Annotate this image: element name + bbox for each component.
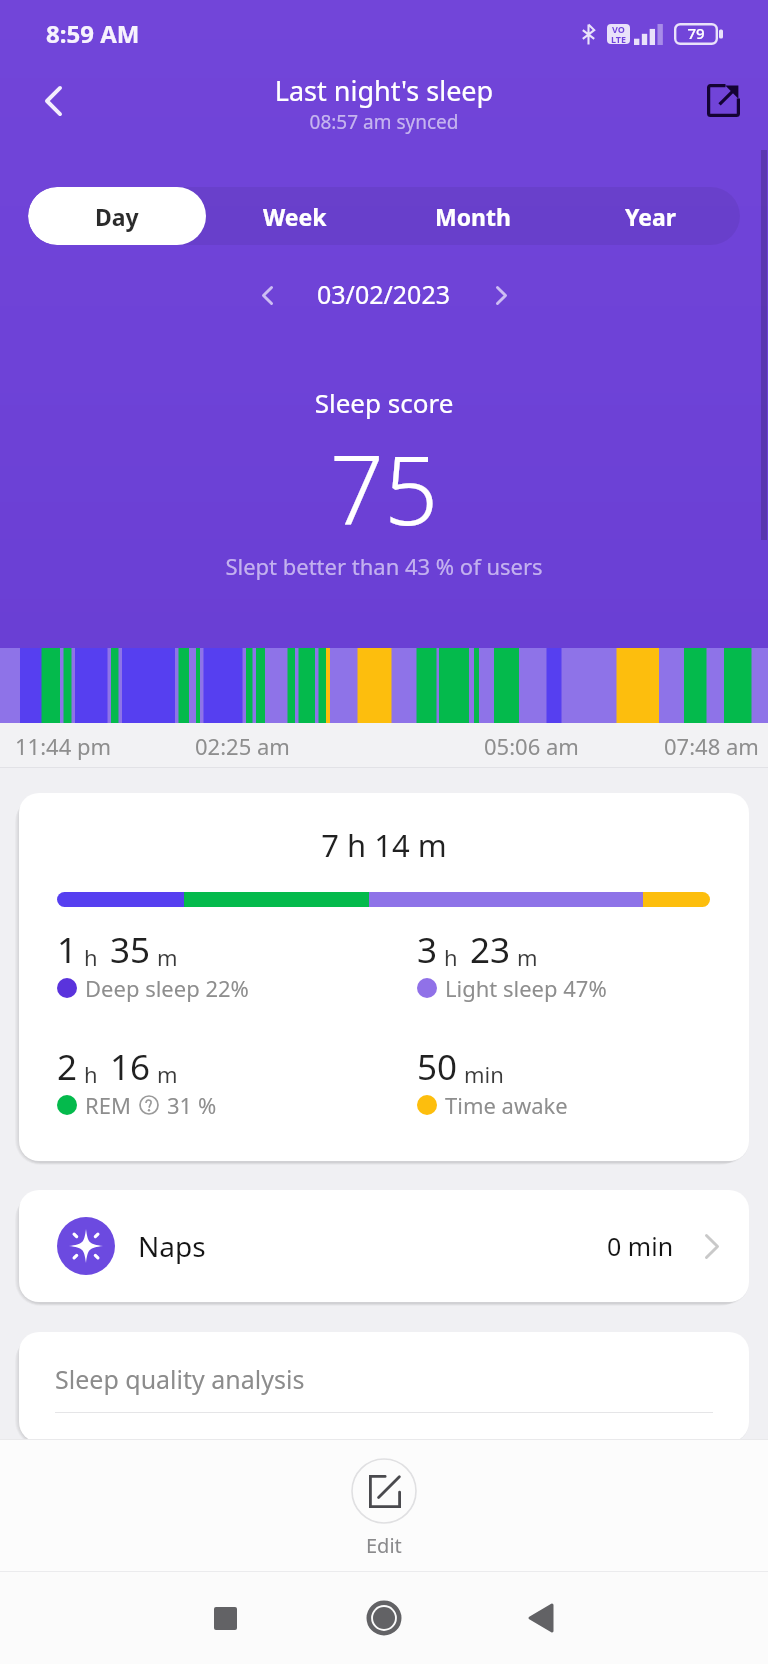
staticText: Last night's sleep [0,72,768,109]
staticText: LTE [607,33,630,44]
staticText: 3 [417,926,438,974]
staticText: Edit [366,1532,402,1559]
staticText: Naps [138,1227,206,1265]
staticText: Sleep score [0,385,768,420]
button[interactable]: Home [354,1588,414,1648]
staticText: 2 [57,1043,78,1091]
staticText: 0 min [607,1229,674,1263]
staticText: Slept better than 43 % of users [0,551,768,581]
staticText: REM [85,1090,131,1120]
button[interactable]: Day [28,187,206,245]
button[interactable]: Next day [479,273,523,317]
staticText: 1 [57,926,78,974]
staticText: 50 [417,1043,458,1091]
staticText: 07:48 am [664,731,759,761]
staticText: Light sleep 47% [445,973,607,1003]
staticText: 16 [110,1043,151,1091]
staticText: 11:44 pm [15,731,112,761]
button[interactable]: Back [23,71,83,131]
staticText: Time awake [445,1090,568,1120]
staticText: 35 [110,926,151,974]
staticText: h [444,942,458,972]
staticText: 7 h 14 m [19,824,749,866]
staticText: m [157,1059,178,1089]
button[interactable]: Back [511,1588,571,1648]
staticText: VO [607,24,630,35]
button[interactable]: Recent apps [195,1588,255,1648]
staticText: Deep sleep 22% [85,973,249,1003]
button[interactable]: Week [206,187,384,245]
staticText: min [464,1059,504,1089]
staticText: 8:59 AM [46,17,140,50]
staticText: Day [95,201,139,232]
staticText: 75 [0,423,768,552]
staticText: h [84,942,98,972]
staticText: m [517,942,538,972]
staticText: 08:57 am synced [0,109,768,135]
button[interactable]: Year [562,187,740,245]
staticText: 79 [674,23,718,43]
staticText: 03/02/2023 [317,277,451,311]
staticText: 05:06 am [484,731,579,761]
staticText: 02:25 am [195,731,290,761]
staticText: Sleep quality analysis [55,1362,305,1396]
staticText: h [84,1059,98,1089]
button[interactable]: Naps [57,1190,719,1302]
button[interactable]: Share [693,70,753,130]
staticText: Week [263,201,327,232]
staticText: m [157,942,178,972]
staticText: 23 [470,926,511,974]
staticText: 31 % [167,1090,217,1120]
staticText: Month [435,201,511,232]
button[interactable]: Edit [351,1458,417,1559]
button[interactable]: Previous day [245,273,289,317]
button[interactable]: Month [384,187,562,245]
staticText: Year [625,201,677,232]
